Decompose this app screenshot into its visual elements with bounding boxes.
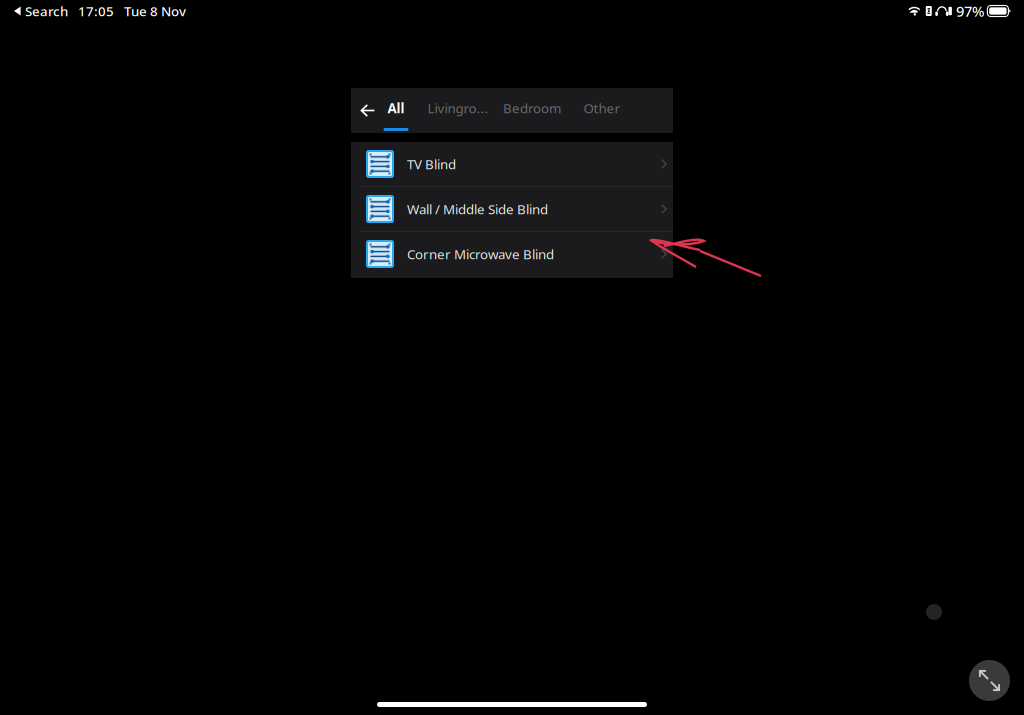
button[interactable]: Expand to full screen <box>969 660 1010 701</box>
button[interactable]: Other <box>583 88 621 133</box>
button[interactable]: Bedroom <box>503 88 561 133</box>
button[interactable]: Wall / Middle Side Blind <box>351 187 673 232</box>
staticText: Wall / Middle Side Blind <box>407 200 548 218</box>
staticText: Other <box>583 99 620 117</box>
staticText: All <box>387 99 404 117</box>
button[interactable]: Back <box>351 88 383 133</box>
staticText: Livingro... <box>427 99 488 117</box>
staticText: Tue 8 Nov <box>124 2 186 20</box>
staticText: 97% <box>956 1 984 21</box>
staticText: TV Blind <box>407 155 456 173</box>
staticText: 17:05 <box>78 2 114 20</box>
staticText: Bedroom <box>503 99 561 117</box>
button[interactable]: Livingro... <box>428 88 488 133</box>
staticText: Corner Microwave Blind <box>407 245 554 263</box>
button[interactable]: TV Blind <box>351 142 673 187</box>
button[interactable]: Corner Microwave Blind <box>351 232 673 278</box>
button[interactable]: All <box>383 88 409 133</box>
staticText: Search <box>25 2 68 20</box>
